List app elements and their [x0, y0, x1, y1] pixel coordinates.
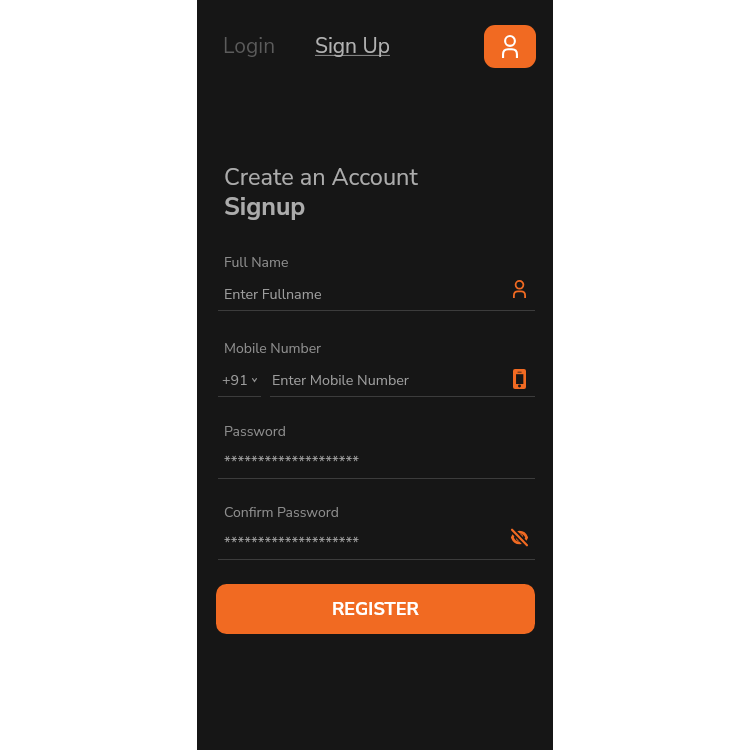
staticText: Signup [224, 190, 306, 224]
staticText: Full Name [224, 253, 289, 272]
staticText: REGISTER [332, 597, 419, 622]
button[interactable]: Country code +91 [218, 366, 261, 396]
staticText: Enter Mobile Number [272, 371, 409, 391]
button[interactable] [218, 498, 535, 559]
button[interactable]: Sign Up [315, 32, 390, 61]
button[interactable]: REGISTER [216, 584, 535, 634]
button[interactable]: Login [223, 32, 276, 61]
staticText: +91 [222, 371, 248, 391]
staticText: Sign Up [315, 32, 390, 61]
staticText: Enter Fullname [224, 285, 322, 305]
staticText: Create an Account [224, 161, 418, 193]
button[interactable] [218, 334, 535, 396]
staticText: ******************** [224, 452, 360, 472]
button[interactable] [218, 248, 535, 310]
button[interactable]: Profile [484, 25, 536, 68]
staticText: Confirm Password [224, 503, 339, 522]
staticText: Password [224, 422, 286, 441]
button[interactable] [218, 417, 535, 478]
button[interactable]: Show password [505, 524, 534, 551]
staticText: Login [223, 32, 276, 61]
staticText: ******************** [224, 533, 360, 553]
staticText: Mobile Number [224, 339, 322, 358]
